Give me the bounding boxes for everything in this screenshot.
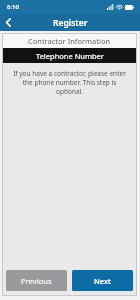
staticText: Telephone Number [36,51,104,61]
staticText: If you have a contractor, please enter t… [9,69,130,96]
staticText: 6:10 [7,3,19,11]
staticText: Register [53,17,88,29]
button[interactable]: Back [0,14,17,31]
button[interactable]: Previous [6,270,67,291]
button[interactable]: Next [72,270,133,291]
staticText: Contractor Information [28,36,111,46]
staticText: Previous [21,276,52,286]
staticText: Next [94,276,111,286]
